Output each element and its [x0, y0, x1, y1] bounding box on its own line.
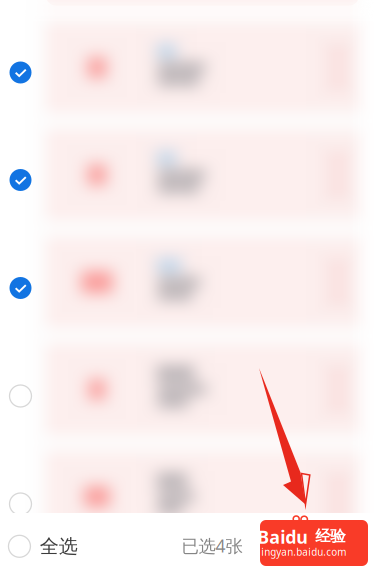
button[interactable]: Select [0, 374, 42, 418]
staticText: Baidu [257, 525, 308, 549]
button[interactable]: Select [0, 482, 42, 526]
button[interactable]: Selected [0, 158, 42, 202]
button[interactable]: Selected [0, 266, 42, 310]
staticText: 已选4张 [181, 534, 242, 558]
button[interactable]: 全选 [0, 521, 92, 570]
staticText: jingyan.baidu.com [258, 545, 346, 559]
staticText: 全选 [40, 534, 78, 558]
button[interactable]: Selected [0, 50, 42, 94]
staticText: 经验 [315, 526, 345, 546]
